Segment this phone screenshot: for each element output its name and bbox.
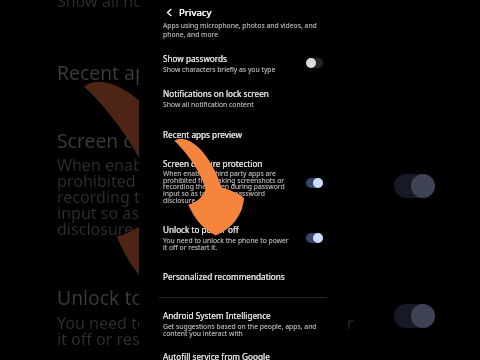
staticText: phone, and more	[163, 30, 219, 39]
staticText: Autofill service from Google	[163, 351, 270, 360]
staticText: Unlock to power off	[163, 224, 239, 235]
staticText: input so as to prevent password	[57, 202, 298, 224]
staticText: Screen capture protection	[163, 158, 263, 169]
staticText: Notifications on lock screen	[163, 88, 269, 99]
staticText: When enabled, third party apps are	[163, 169, 276, 178]
staticText: it off or restart it.	[163, 243, 218, 252]
staticText: recording the screen during password	[163, 182, 285, 191]
staticText: Show passwords	[163, 53, 227, 64]
staticText: Get suggestions based on the people, app…	[163, 322, 317, 331]
staticText: disclosure.	[57, 218, 138, 240]
button[interactable]: Toggle on	[306, 233, 323, 243]
button[interactable]: Back	[161, 4, 177, 20]
staticText: Show all notification content	[57, 0, 271, 12]
staticText: prohibited from taking screenshots or	[163, 176, 285, 185]
staticText: Show all notification content	[163, 100, 254, 109]
staticText: content you interact with	[163, 329, 243, 338]
staticText: prohibited from taking screenshots or	[57, 170, 344, 192]
staticText: Recent apps preview	[57, 59, 244, 85]
staticText: disclosure.	[163, 196, 198, 205]
button[interactable]: Toggle on	[306, 178, 323, 188]
staticText: recording the screen during password	[57, 186, 345, 208]
staticText: Show characters briefly as you type	[163, 65, 276, 74]
staticText: it off or restart it.	[57, 328, 186, 350]
staticText: Screen capture protection	[57, 127, 292, 153]
staticText: input so as to prevent password	[163, 189, 265, 198]
staticText: You need to unlock the phone to power	[163, 236, 289, 245]
staticText: Privacy	[179, 6, 212, 19]
staticText: Personalized recommendations	[163, 271, 285, 282]
staticText: Apps using microphone, photos and videos…	[163, 21, 317, 30]
staticText: Android System Intelligence	[163, 310, 271, 321]
staticText: Unlock to power off	[57, 284, 236, 310]
staticText: When enabled, third party apps are	[57, 154, 324, 176]
staticText: Recent apps preview	[163, 129, 242, 140]
button[interactable]: Toggle off	[306, 58, 323, 68]
staticText: You need to unlock the phone to power	[57, 312, 354, 334]
button[interactable]: Back	[159, 0, 327, 24]
